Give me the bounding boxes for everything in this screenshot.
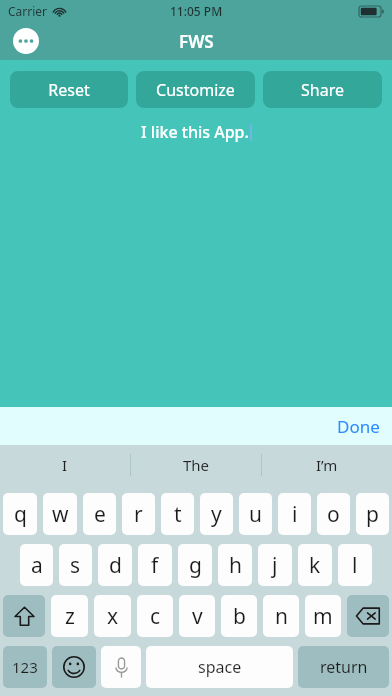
button[interactable]: z bbox=[51, 595, 88, 637]
staticText: Reset bbox=[48, 79, 90, 101]
staticText: y bbox=[211, 500, 222, 529]
staticText: u bbox=[249, 500, 262, 529]
staticText: 11:05 PM bbox=[170, 3, 223, 19]
button[interactable]: x bbox=[94, 595, 131, 637]
staticText: return bbox=[320, 656, 368, 678]
staticText: Customize bbox=[156, 79, 235, 101]
staticText: space bbox=[198, 656, 242, 678]
staticText: FWS bbox=[179, 30, 214, 53]
button[interactable]: l bbox=[338, 544, 372, 586]
staticText: v bbox=[192, 602, 203, 631]
button[interactable]: y bbox=[200, 493, 233, 535]
staticText: i bbox=[292, 500, 298, 529]
button[interactable]: q bbox=[3, 493, 37, 535]
staticText: t bbox=[174, 500, 182, 529]
staticText: Carrier bbox=[8, 3, 48, 19]
button[interactable]: t bbox=[161, 493, 194, 535]
button[interactable]: v bbox=[179, 595, 215, 637]
staticText: g bbox=[189, 551, 202, 580]
staticText: b bbox=[233, 602, 246, 631]
staticText: 123 bbox=[12, 657, 38, 677]
button[interactable]: Customize bbox=[136, 71, 255, 108]
button[interactable]: return bbox=[298, 646, 389, 688]
staticText: s bbox=[70, 551, 81, 580]
button[interactable]: j bbox=[258, 544, 292, 586]
staticText: I like this App. bbox=[141, 121, 249, 143]
button[interactable]: k bbox=[298, 544, 332, 586]
button[interactable]: Menu bbox=[13, 28, 39, 54]
button[interactable]: w bbox=[43, 493, 77, 535]
staticText: Share bbox=[301, 79, 344, 101]
button[interactable]: Shift bbox=[3, 595, 45, 637]
button[interactable]: 123 bbox=[3, 646, 47, 688]
staticText: f bbox=[151, 551, 159, 580]
staticText: The bbox=[183, 455, 210, 475]
button[interactable]: a bbox=[20, 544, 53, 586]
button[interactable]: Done bbox=[337, 415, 380, 438]
button[interactable]: s bbox=[59, 544, 92, 586]
staticText: p bbox=[366, 500, 379, 529]
button[interactable]: p bbox=[356, 493, 389, 535]
button[interactable]: Emoji bbox=[52, 646, 96, 688]
button[interactable]: I bbox=[0, 445, 130, 485]
button[interactable]: h bbox=[218, 544, 252, 586]
button[interactable]: e bbox=[83, 493, 116, 535]
staticText: h bbox=[229, 551, 242, 580]
button[interactable]: Backspace bbox=[347, 595, 389, 637]
staticText: w bbox=[52, 500, 69, 529]
staticText: l bbox=[352, 551, 358, 580]
staticText: n bbox=[275, 602, 288, 631]
button[interactable]: o bbox=[317, 493, 350, 535]
staticText: k bbox=[309, 551, 321, 580]
button[interactable]: r bbox=[122, 493, 155, 535]
staticText: q bbox=[14, 500, 27, 529]
button[interactable]: I’m bbox=[262, 445, 392, 485]
button[interactable]: m bbox=[305, 595, 341, 637]
button[interactable]: i bbox=[278, 493, 311, 535]
button[interactable]: f bbox=[138, 544, 172, 586]
staticText: c bbox=[150, 602, 161, 631]
button[interactable]: u bbox=[239, 493, 272, 535]
staticText: I bbox=[62, 455, 68, 475]
staticText: z bbox=[65, 602, 75, 631]
staticText: o bbox=[327, 500, 340, 529]
button[interactable]: b bbox=[221, 595, 257, 637]
button[interactable]: d bbox=[98, 544, 132, 586]
button[interactable]: Dictation bbox=[101, 646, 141, 688]
button[interactable]: Reset bbox=[10, 71, 128, 108]
staticText: a bbox=[31, 551, 43, 580]
staticText: Done bbox=[337, 415, 380, 438]
button[interactable]: n bbox=[263, 595, 299, 637]
button[interactable]: Share bbox=[263, 71, 382, 108]
staticText: I’m bbox=[316, 455, 338, 475]
staticText: e bbox=[94, 500, 106, 529]
staticText: x bbox=[107, 602, 119, 631]
staticText: m bbox=[313, 602, 333, 631]
button[interactable]: The bbox=[131, 445, 261, 485]
button[interactable]: space bbox=[146, 646, 293, 688]
button[interactable]: c bbox=[137, 595, 173, 637]
button[interactable]: g bbox=[178, 544, 212, 586]
staticText: j bbox=[272, 551, 278, 580]
staticText: d bbox=[109, 551, 122, 580]
staticText: r bbox=[134, 500, 143, 529]
